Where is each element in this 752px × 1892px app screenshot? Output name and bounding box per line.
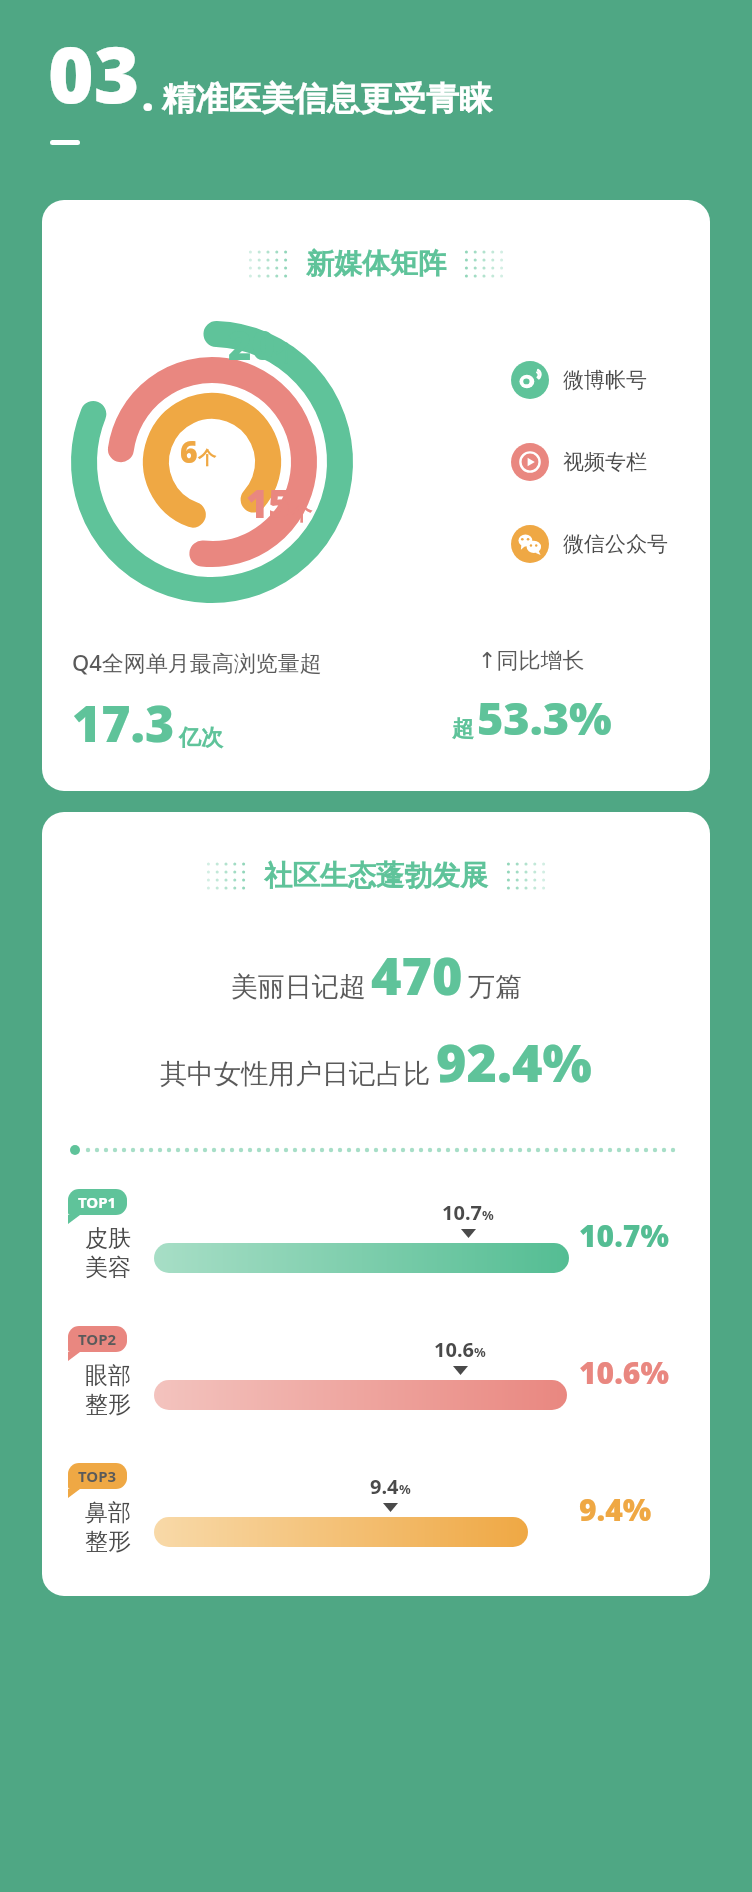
staticText: 美丽日记超: [231, 970, 366, 1004]
staticText: 社区生态蓬勃发展: [264, 858, 488, 893]
staticText: 92.4%: [436, 1026, 592, 1097]
button[interactable]: 微博帐号: [511, 361, 696, 399]
staticText: 微博帐号: [563, 367, 647, 393]
staticText: 个: [291, 500, 312, 526]
staticText: TOP2: [78, 1329, 117, 1349]
staticText: %: [482, 1206, 494, 1224]
staticText: 微信公众号: [563, 531, 668, 557]
staticText: 470: [371, 939, 463, 1010]
other: 微博帐号: [511, 361, 549, 399]
other: 视频专栏: [511, 443, 549, 481]
staticText: .: [142, 68, 154, 122]
staticText: Q4全网单月最高浏览量超: [72, 647, 322, 677]
staticText: TOP3: [78, 1466, 117, 1486]
staticText: %: [399, 1480, 411, 1498]
staticText: 9.4: [370, 1473, 399, 1500]
staticText: 个: [198, 447, 216, 470]
button[interactable]: 新媒体矩阵: [42, 200, 710, 791]
staticText: 6: [180, 431, 198, 472]
staticText: 10.6%: [579, 1352, 669, 1393]
staticText: 10.7: [442, 1199, 482, 1226]
button[interactable]: 视频专栏: [511, 443, 696, 481]
button[interactable]: TOP3: [68, 1463, 684, 1556]
staticText: TOP1: [78, 1192, 117, 1212]
staticText: 10.6: [434, 1336, 474, 1363]
staticText: 万篇: [468, 970, 522, 1004]
staticText: 15: [246, 477, 291, 529]
button[interactable]: TOP2: [68, 1326, 684, 1419]
button[interactable]: 微信公众号: [511, 525, 696, 563]
staticText: 鼻部: [85, 1498, 131, 1527]
staticText: 整形: [85, 1390, 131, 1419]
staticText: 眼部: [85, 1361, 131, 1390]
staticText: 新媒体矩阵: [306, 246, 446, 281]
staticText: %: [474, 1343, 486, 1361]
button[interactable]: 社区生态蓬勃发展: [42, 812, 710, 1596]
staticText: 亿次: [179, 724, 223, 752]
staticText: 53.3%: [477, 687, 612, 748]
staticText: 03: [48, 20, 140, 126]
staticText: 视频专栏: [563, 449, 647, 475]
staticText: 17.3: [72, 689, 175, 757]
staticText: 个: [275, 340, 297, 368]
button[interactable]: TOP1: [68, 1189, 684, 1282]
staticText: 9.4%: [579, 1489, 652, 1530]
staticText: 整形: [85, 1527, 131, 1556]
staticText: 10.7%: [579, 1215, 669, 1256]
staticText: 20: [228, 317, 275, 371]
staticText: 皮肤: [85, 1224, 131, 1253]
staticText: 超: [452, 715, 474, 743]
staticText: 精准医美信息更受青睐: [162, 78, 492, 120]
staticText: ↑同比增长: [478, 647, 585, 675]
other: 微信公众号: [511, 525, 549, 563]
staticText: 美容: [85, 1253, 131, 1282]
staticText: 其中女性用户日记占比: [160, 1057, 430, 1091]
